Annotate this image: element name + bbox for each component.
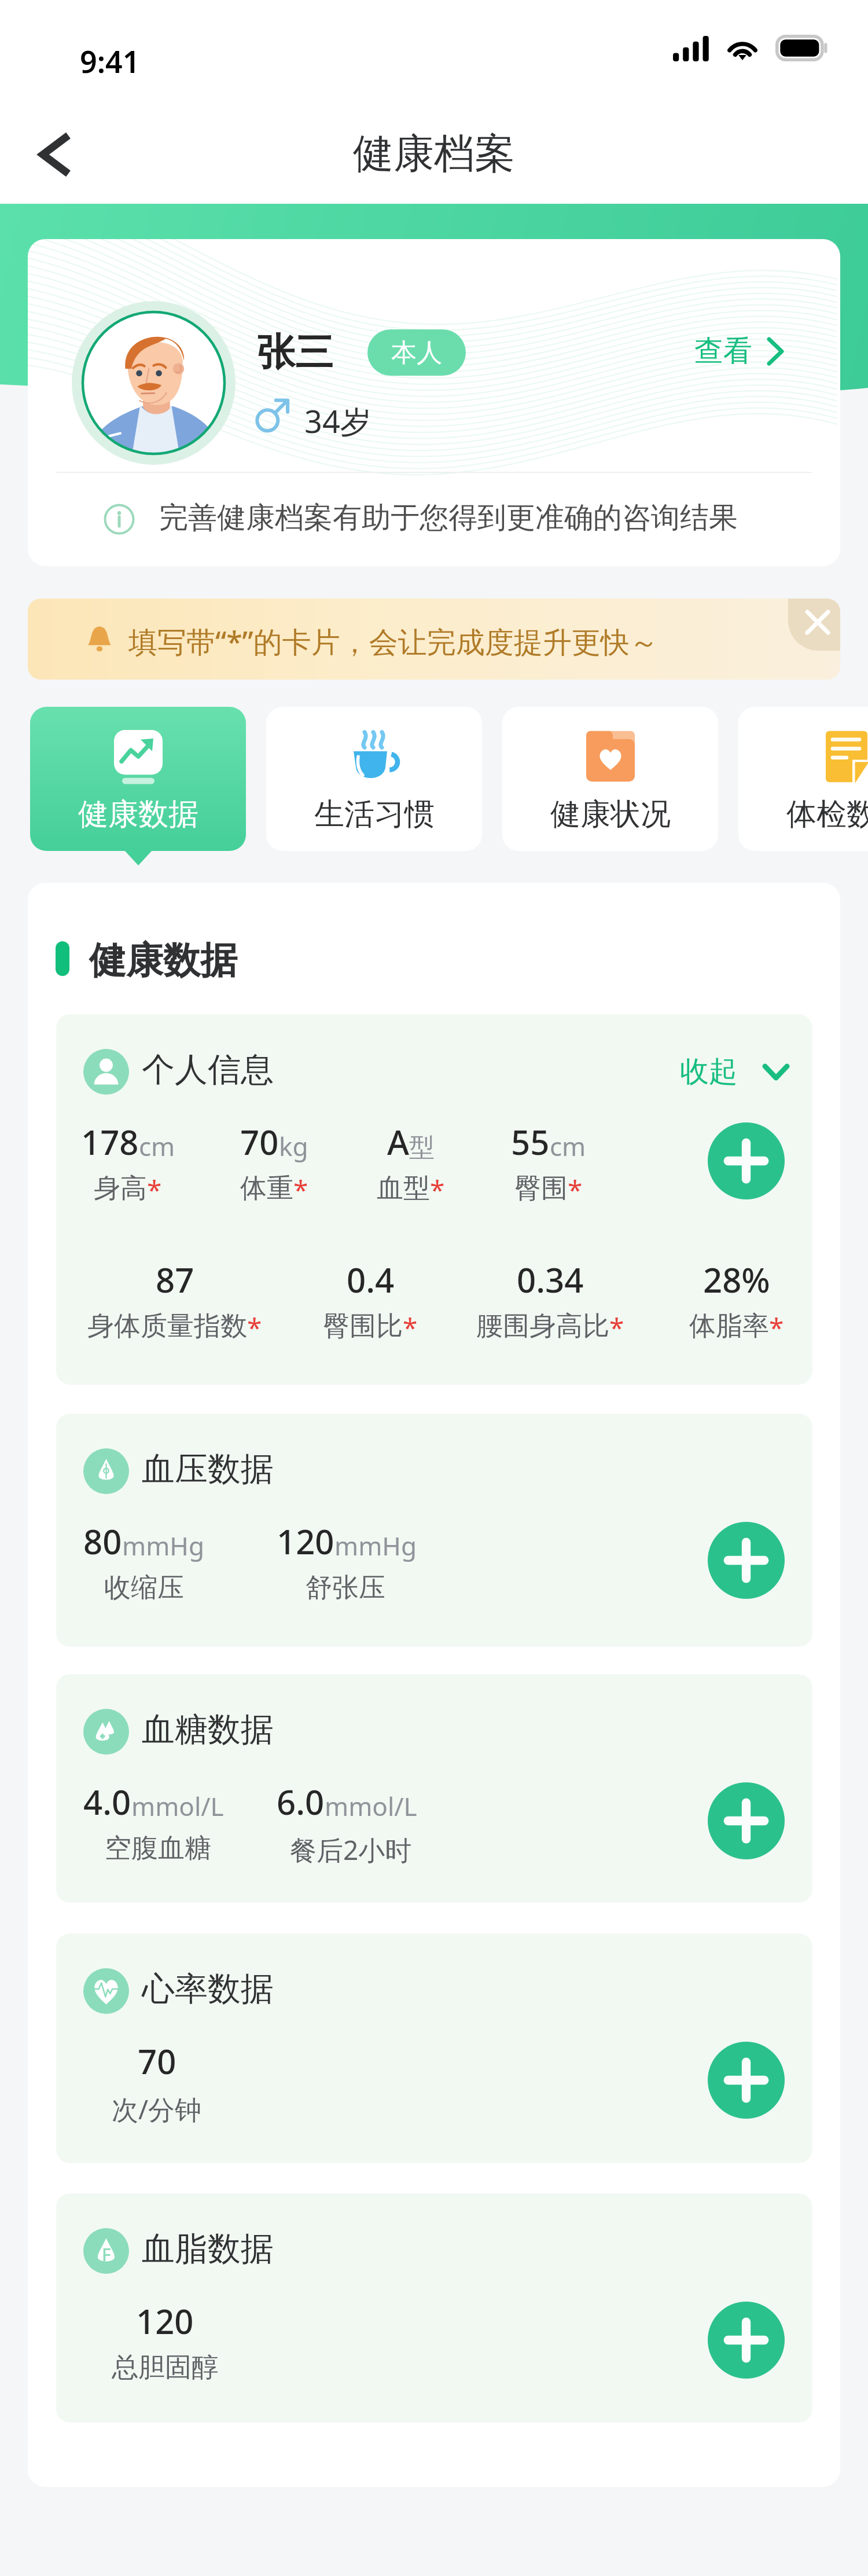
staticText: 本人 xyxy=(391,337,442,369)
staticText: 70 xyxy=(240,1119,279,1165)
staticText: 收缩压 xyxy=(104,1571,184,1605)
staticText: 空腹血糖 xyxy=(105,1832,211,1865)
button[interactable]: Back xyxy=(17,116,91,190)
staticText: 张三 xyxy=(257,328,333,376)
staticText: 血脂数据 xyxy=(142,2228,274,2270)
button[interactable]: 健康数据 xyxy=(30,707,246,851)
staticText: kg xyxy=(279,1129,308,1164)
staticText: * xyxy=(247,1309,262,1346)
staticText: 收起 xyxy=(680,1054,738,1090)
staticText: 健康数据 xyxy=(78,795,198,834)
staticText: 臀围比 xyxy=(323,1309,403,1343)
staticText: 身高 xyxy=(94,1172,147,1205)
staticText: 血糖数据 xyxy=(142,1709,274,1751)
staticText: mmol/L xyxy=(325,1789,417,1823)
staticText: cm xyxy=(550,1129,586,1164)
staticText: mmHg xyxy=(122,1528,204,1563)
button[interactable]: 收起 xyxy=(680,1054,789,1090)
button[interactable]: 生活习惯 xyxy=(266,707,482,851)
staticText: 178 xyxy=(81,1119,139,1165)
staticText: 9:41 xyxy=(80,41,140,82)
staticText: 完善健康档案有助于您得到更准确的咨询结果 xyxy=(159,500,738,536)
staticText: 总胆固醇 xyxy=(112,2351,218,2384)
staticText: 血型 xyxy=(377,1172,430,1205)
staticText: 查看 xyxy=(694,333,752,369)
staticText: 55 xyxy=(511,1119,550,1165)
staticText: 舒张压 xyxy=(306,1571,385,1605)
staticText: A xyxy=(387,1119,409,1165)
staticText: 次/分钟 xyxy=(112,2091,202,2127)
staticText: 4.0 xyxy=(83,1779,131,1825)
staticText: 健康状况 xyxy=(550,795,671,834)
staticText: mmHg xyxy=(334,1528,417,1563)
staticText: 0.4 xyxy=(347,1257,395,1302)
staticText: cm xyxy=(139,1129,175,1164)
staticText: 个人信息 xyxy=(142,1049,274,1091)
staticText: F xyxy=(102,2243,111,2266)
staticText: 体重 xyxy=(240,1172,293,1205)
button[interactable]: Add xyxy=(708,2302,785,2379)
staticText: mmol/L xyxy=(131,1789,224,1823)
staticText: 血压数据 xyxy=(142,1448,274,1490)
staticText: 健康档案 xyxy=(353,129,515,179)
staticText: 健康数据 xyxy=(89,937,237,984)
staticText: 87 xyxy=(156,1257,194,1302)
button[interactable]: Add xyxy=(708,2042,785,2119)
staticText: 型 xyxy=(409,1132,435,1164)
staticText: 体检数据 xyxy=(786,795,868,834)
staticText: 70 xyxy=(138,2038,176,2084)
button[interactable]: Add xyxy=(708,1522,785,1599)
staticText: 心率数据 xyxy=(142,1968,274,2010)
staticText: 6.0 xyxy=(277,1779,325,1825)
staticText: 28% xyxy=(703,1257,770,1302)
staticText: * xyxy=(403,1309,418,1346)
button[interactable]: 体检数据 xyxy=(738,707,868,851)
staticText: 身体质量指数 xyxy=(87,1309,247,1343)
staticText: 腰围身高比 xyxy=(476,1309,609,1343)
staticText: 生活习惯 xyxy=(314,795,435,834)
button[interactable]: Add xyxy=(708,1122,785,1199)
staticText: 34岁 xyxy=(304,399,372,442)
staticText: 臀围 xyxy=(514,1172,568,1205)
staticText: 填写带“*”的卡片，会让完成度提升更快～ xyxy=(128,622,659,661)
button[interactable]: 查看 xyxy=(694,333,784,369)
staticText: 体脂率 xyxy=(689,1309,769,1343)
staticText: 120 xyxy=(277,1518,334,1564)
button[interactable]: 健康状况 xyxy=(502,707,718,851)
button[interactable]: Add xyxy=(708,1782,785,1859)
staticText: 餐后2小时 xyxy=(290,1832,412,1868)
staticText: 120 xyxy=(136,2298,194,2344)
staticText: 0.34 xyxy=(517,1257,584,1302)
button[interactable]: Close xyxy=(788,599,840,651)
staticText: * xyxy=(769,1309,784,1346)
staticText: * xyxy=(430,1172,445,1208)
staticText: * xyxy=(147,1172,162,1208)
staticText: * xyxy=(293,1172,308,1208)
staticText: * xyxy=(568,1172,583,1208)
staticText: * xyxy=(609,1309,624,1346)
staticText: 80 xyxy=(83,1518,122,1564)
